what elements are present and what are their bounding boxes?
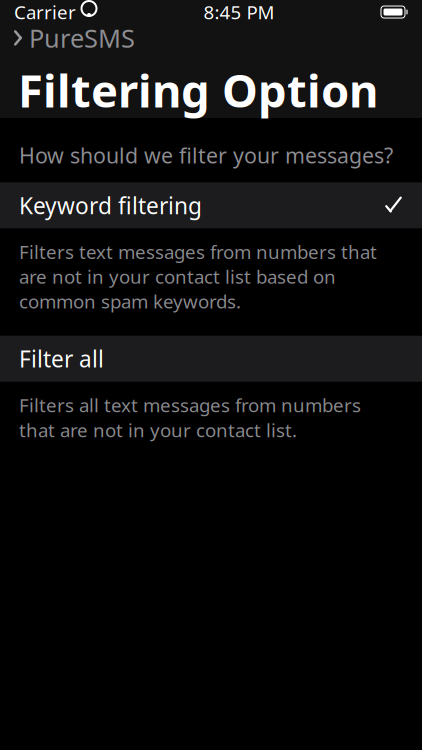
staticText: Filters all text messages from numbers t… (19, 393, 361, 442)
staticText: Carrier (14, 0, 76, 24)
staticText: Filter all (19, 344, 104, 374)
staticText: How should we filter your messages? (19, 141, 393, 169)
button[interactable]: PureSMS (0, 22, 149, 54)
staticText: 8:45 PM (203, 0, 274, 24)
button[interactable]: Filter all (0, 336, 422, 382)
staticText: PureSMS (29, 21, 135, 55)
staticText: Keyword filtering (19, 190, 202, 220)
staticText: Filtering Option (18, 60, 378, 120)
staticText: Filters text messages from numbers that … (19, 239, 377, 314)
button[interactable]: Keyword filtering (0, 182, 422, 228)
